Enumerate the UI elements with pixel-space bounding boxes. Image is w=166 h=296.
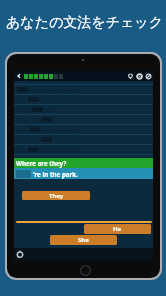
button[interactable]: Are (14, 145, 153, 154)
button[interactable]: More (145, 73, 152, 80)
button[interactable]: She (50, 235, 117, 245)
staticText: 're in the park. (33, 170, 78, 178)
button[interactable]: We (14, 95, 153, 104)
button[interactable]: Settings (136, 73, 143, 80)
button[interactable]: How are (14, 115, 153, 124)
button[interactable]: Assistant (16, 250, 24, 258)
staticText: あなたの文法をチェック (6, 14, 163, 32)
button[interactable]: He (84, 224, 151, 234)
button[interactable]: She (14, 125, 153, 134)
button[interactable]: Hint (127, 73, 134, 80)
button[interactable]: No, they (14, 135, 153, 144)
staticText: Where are they? (16, 159, 67, 167)
button[interactable]: you a police officer? (14, 85, 153, 94)
staticText: She (78, 236, 89, 244)
button[interactable]: Back (15, 72, 23, 80)
button[interactable]: They (14, 105, 153, 114)
staticText: He (113, 225, 122, 233)
staticText: They (49, 192, 64, 200)
button[interactable]: They (22, 191, 90, 200)
